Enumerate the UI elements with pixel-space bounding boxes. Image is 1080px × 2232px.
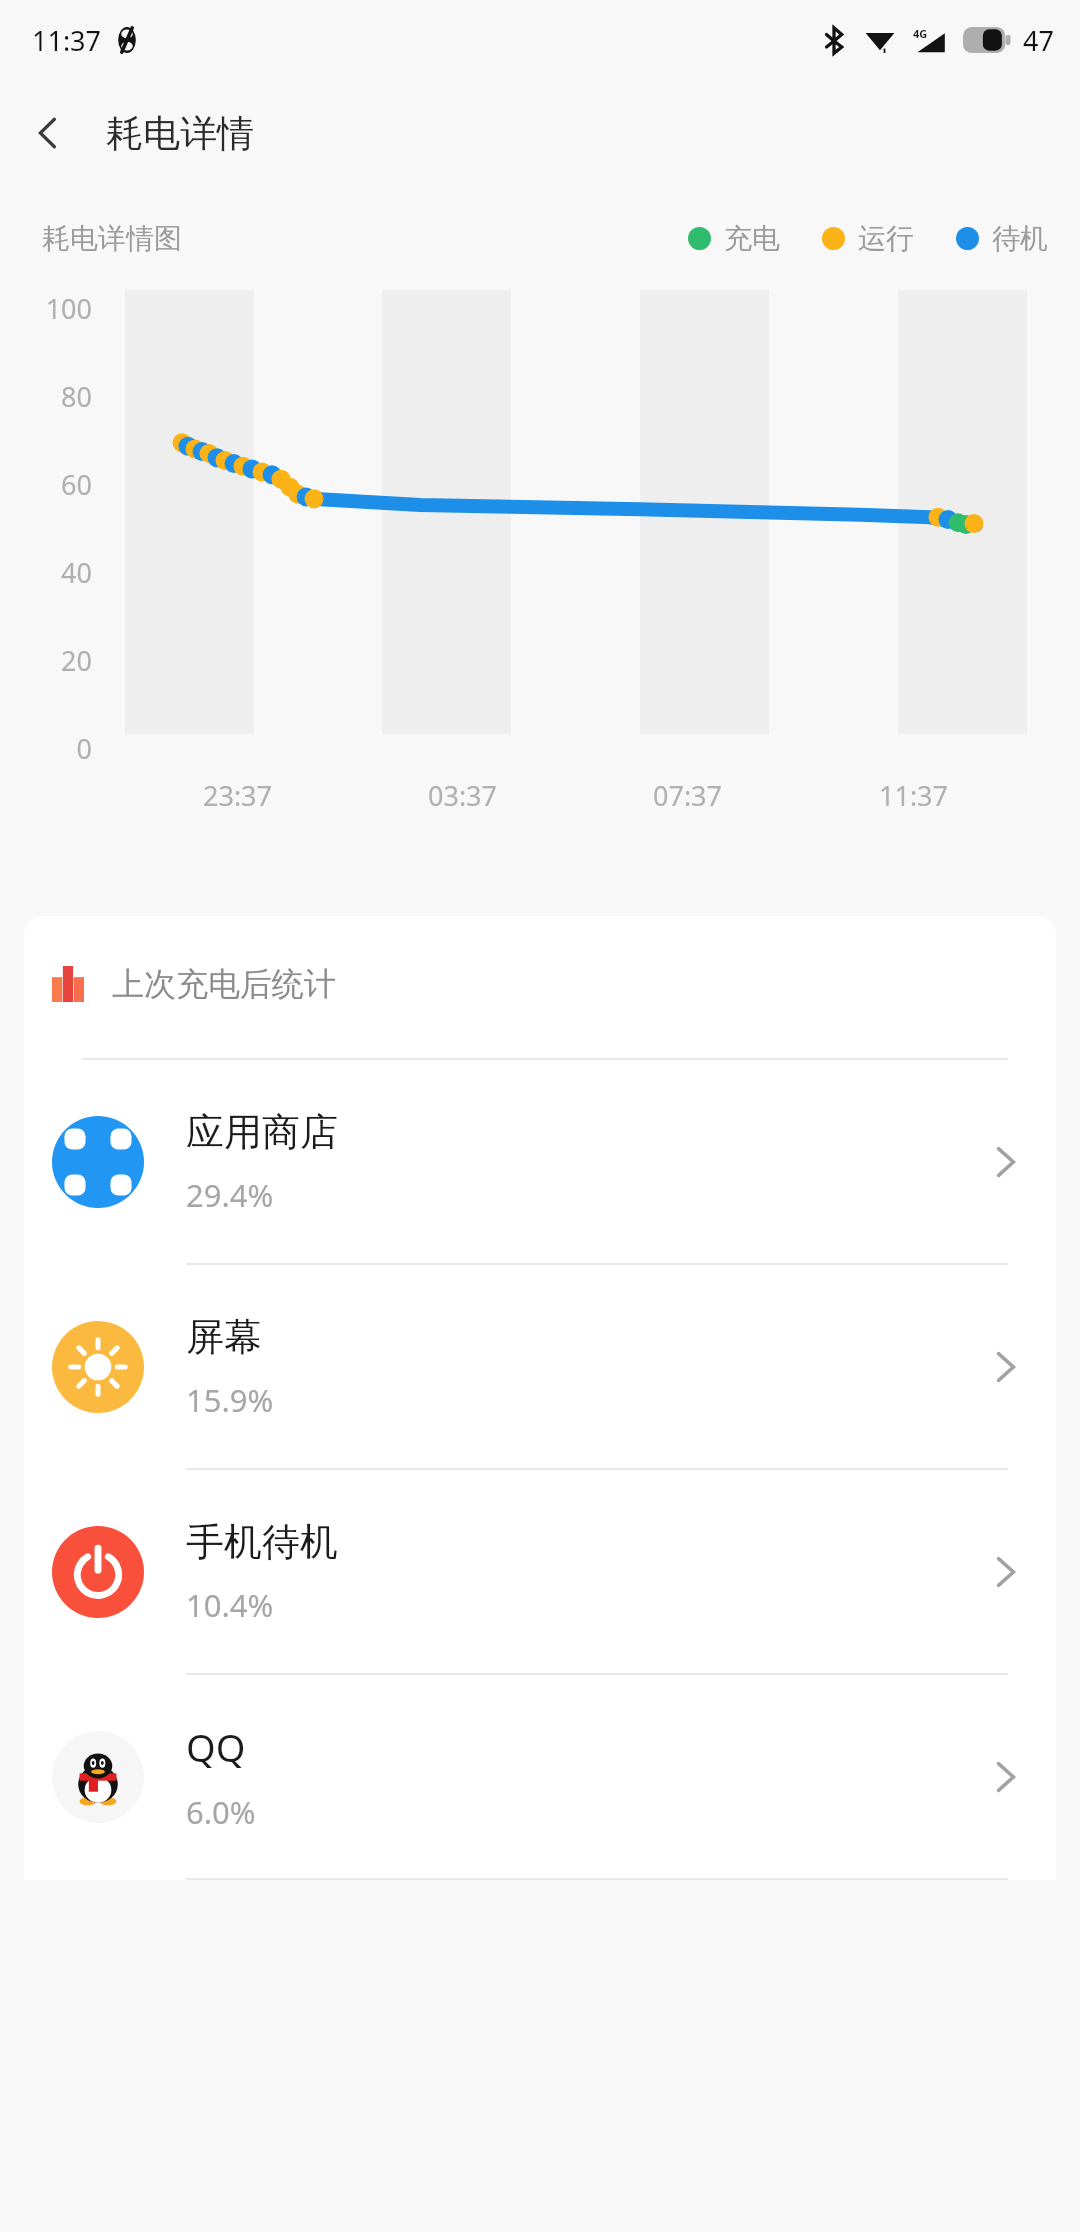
button[interactable]: 充电: [688, 221, 780, 256]
staticText: 40: [30, 554, 92, 591]
button[interactable]: 手机待机: [24, 1470, 1056, 1675]
staticText: QQ: [186, 1721, 246, 1773]
staticText: 运行: [858, 221, 914, 256]
staticText: 07:37: [653, 777, 723, 814]
button[interactable]: Back: [14, 99, 82, 167]
staticText: 应用商店: [186, 1108, 338, 1156]
staticText: 屏幕: [186, 1313, 262, 1361]
staticText: 47: [1023, 22, 1054, 59]
button[interactable]: 屏幕: [24, 1265, 1056, 1470]
staticText: 4G: [913, 26, 928, 41]
staticText: 充电: [724, 221, 780, 256]
staticText: 上次充电后统计: [112, 964, 336, 1004]
staticText: 待机: [992, 221, 1048, 256]
staticText: 80: [30, 378, 92, 415]
staticText: 耗电详情: [106, 110, 254, 157]
staticText: 15.9%: [186, 1379, 274, 1421]
button[interactable]: 应用商店: [24, 1060, 1056, 1265]
staticText: 手机待机: [186, 1518, 338, 1566]
button[interactable]: 待机: [956, 221, 1048, 256]
staticText: 23:37: [203, 777, 273, 814]
button[interactable]: 运行: [822, 221, 914, 256]
staticText: 11:37: [879, 777, 949, 814]
staticText: 29.4%: [186, 1174, 274, 1216]
staticText: 耗电详情图: [42, 221, 182, 256]
staticText: 0: [30, 730, 92, 767]
staticText: 20: [30, 642, 92, 679]
staticText: 60: [30, 466, 92, 503]
staticText: 03:37: [428, 777, 498, 814]
staticText: 6.0%: [186, 1791, 256, 1833]
staticText: 11:37: [32, 22, 102, 59]
staticText: 10.4%: [186, 1584, 274, 1626]
staticText: 100: [30, 290, 92, 327]
button[interactable]: QQ: [24, 1675, 1056, 1880]
